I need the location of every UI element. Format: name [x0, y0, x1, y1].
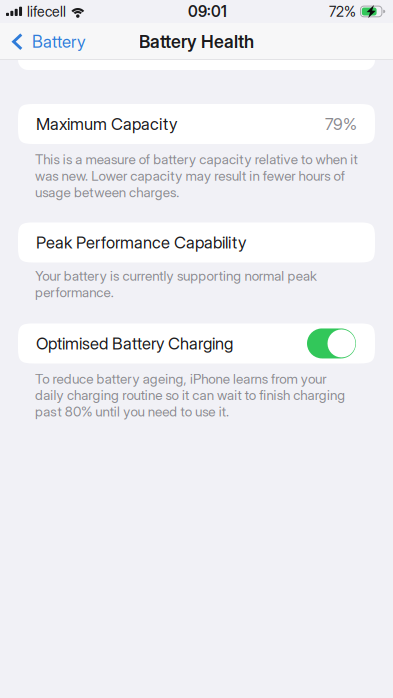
staticText: Peak Performance Capability — [36, 232, 246, 252]
button[interactable]: Optimised Battery Charging — [307, 328, 356, 358]
staticText: lifecell — [27, 3, 66, 20]
staticText: Battery — [32, 31, 86, 52]
staticText: 72% — [329, 3, 356, 20]
staticText: Battery Health — [139, 31, 254, 52]
staticText: 09:01 — [188, 2, 227, 21]
staticText: To reduce battery ageing, iPhone learns … — [35, 370, 345, 420]
staticText: Maximum Capacity — [36, 114, 177, 134]
staticText: This is a measure of battery capacity re… — [35, 151, 357, 200]
staticText: Your battery is currently supporting nor… — [35, 267, 317, 300]
staticText: Optimised Battery Charging — [36, 333, 233, 353]
staticText: 79% — [325, 114, 357, 134]
button[interactable]: Battery — [0, 23, 96, 60]
